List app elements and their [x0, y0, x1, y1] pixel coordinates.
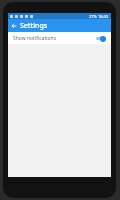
staticText: Show notifications [13, 35, 57, 42]
staticText: 27% 16:33 [89, 14, 109, 19]
button[interactable]: Back [8, 20, 20, 32]
staticText: Settings [20, 21, 48, 31]
button[interactable]: Show notifications [8, 32, 111, 44]
